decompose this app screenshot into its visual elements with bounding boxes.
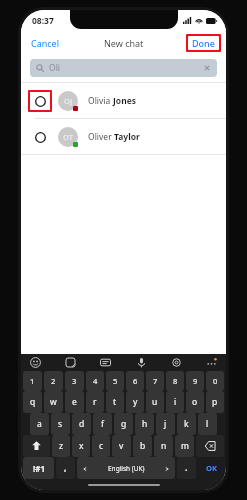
staticText: ,	[64, 462, 67, 474]
button[interactable]: z	[52, 435, 70, 457]
button[interactable]: Shift	[23, 435, 50, 457]
staticText: j	[164, 418, 167, 430]
staticText: 6	[133, 376, 138, 386]
button[interactable]: Emoji	[30, 357, 41, 368]
staticText: p	[212, 396, 218, 408]
button[interactable]: v	[112, 435, 131, 457]
button[interactable]: f	[93, 413, 112, 435]
button[interactable]: x	[72, 435, 90, 457]
staticText: .	[185, 462, 188, 474]
staticText: Done	[192, 37, 215, 49]
button[interactable]: Backspace	[196, 435, 224, 457]
button[interactable]: .	[177, 457, 196, 479]
button[interactable]: g	[114, 413, 133, 435]
button[interactable]: 7	[146, 371, 164, 391]
button[interactable]: More	[206, 357, 217, 368]
button[interactable]: Done	[188, 36, 219, 50]
button[interactable]: OT	[21, 119, 226, 154]
staticText: 1	[30, 376, 35, 386]
staticText: OK	[206, 463, 217, 473]
staticText: Olivia	[88, 95, 113, 107]
staticText: e	[72, 396, 77, 408]
button[interactable]: 5	[106, 371, 124, 391]
button[interactable]: h	[135, 413, 154, 435]
button[interactable]: 0	[206, 371, 224, 391]
button[interactable]: Clipboard	[100, 357, 111, 368]
staticText: s	[58, 418, 63, 430]
staticText: Jones	[113, 95, 136, 107]
button[interactable]: m	[175, 435, 194, 457]
staticText: 9	[193, 376, 198, 386]
staticText: f	[101, 418, 104, 430]
button[interactable]: Clear	[203, 64, 211, 72]
button[interactable]: o	[186, 391, 204, 413]
button[interactable]: Settings	[171, 357, 182, 368]
button[interactable]: Cancel	[21, 35, 66, 51]
staticText: m	[181, 440, 189, 452]
staticText: n	[161, 440, 167, 452]
staticText: r	[93, 396, 97, 408]
staticText: k	[184, 418, 189, 430]
staticText: c	[99, 440, 104, 452]
button[interactable]: 2	[44, 371, 63, 391]
staticText: z	[59, 440, 63, 452]
button[interactable]: 4	[86, 371, 104, 391]
staticText: i	[174, 396, 177, 408]
button[interactable]: OK	[198, 457, 224, 479]
button[interactable]: w	[44, 391, 63, 413]
button[interactable]: ,	[56, 457, 75, 479]
staticText: t	[113, 396, 117, 408]
button[interactable]: OJ	[21, 83, 226, 118]
staticText: 4	[93, 376, 98, 386]
staticText: Oliver	[88, 131, 114, 143]
button[interactable]: 9	[186, 371, 204, 391]
staticText: u	[152, 396, 158, 408]
staticText: o	[192, 396, 198, 408]
button[interactable]: 1	[23, 371, 42, 391]
button[interactable]: English (UK)	[77, 457, 175, 479]
staticText: 0	[213, 376, 218, 386]
button[interactable]: e	[65, 391, 84, 413]
staticText: New chat	[104, 37, 144, 49]
button[interactable]: p	[206, 391, 224, 413]
staticText: 3	[72, 376, 77, 386]
button[interactable]: Voice input	[136, 357, 147, 368]
staticText: English (UK)	[108, 464, 145, 473]
button[interactable]: a	[30, 413, 49, 435]
staticText: OT	[63, 132, 73, 142]
button[interactable]: r	[86, 391, 104, 413]
button[interactable]: 6	[126, 371, 144, 391]
staticText: b	[140, 440, 146, 452]
button[interactable]: q	[23, 391, 42, 413]
staticText: v	[119, 440, 124, 452]
staticText: l	[206, 418, 209, 430]
button[interactable]: c	[92, 435, 110, 457]
button[interactable]: y	[126, 391, 144, 413]
button[interactable]: 8	[166, 371, 184, 391]
staticText: d	[79, 418, 85, 430]
button[interactable]: Oli	[30, 59, 217, 77]
button[interactable]: b	[133, 435, 152, 457]
button[interactable]: j	[156, 413, 175, 435]
button[interactable]: d	[72, 413, 91, 435]
staticText: Cancel	[31, 37, 60, 49]
staticText: w	[50, 396, 57, 408]
button[interactable]: s	[51, 413, 70, 435]
staticText: g	[121, 418, 127, 430]
button[interactable]: Stickers	[65, 357, 76, 368]
staticText: 7	[153, 376, 158, 386]
staticText: 08:37	[32, 15, 54, 27]
button[interactable]: l	[198, 413, 217, 435]
button[interactable]: t	[106, 391, 124, 413]
button[interactable]: 3	[65, 371, 84, 391]
staticText: a	[37, 418, 42, 430]
button[interactable]: u	[146, 391, 164, 413]
button[interactable]: !#1	[23, 457, 54, 479]
staticText: h	[142, 418, 148, 430]
button[interactable]: n	[154, 435, 173, 457]
staticText: !#1	[33, 463, 45, 474]
button[interactable]: k	[177, 413, 196, 435]
staticText: y	[133, 396, 138, 408]
staticText: Oli	[49, 62, 61, 74]
button[interactable]: i	[166, 391, 184, 413]
